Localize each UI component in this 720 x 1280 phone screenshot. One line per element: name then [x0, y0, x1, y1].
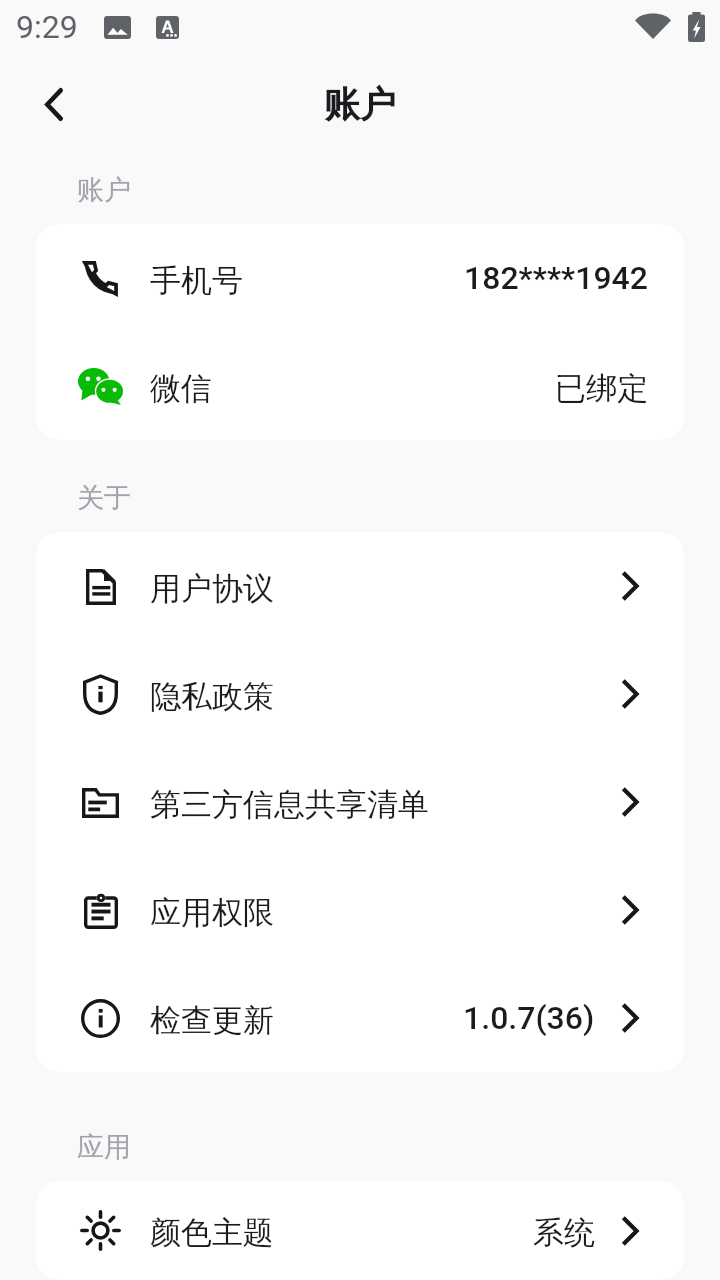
- staticText: 手机号: [150, 261, 243, 300]
- staticText: 9:29: [16, 8, 78, 46]
- button[interactable]: 微信: [36, 332, 684, 440]
- button[interactable]: 用户协议: [36, 532, 684, 640]
- staticText: 隐私政策: [150, 677, 274, 716]
- button[interactable]: 隐私政策: [36, 640, 684, 748]
- staticText: 颜色主题: [150, 1213, 274, 1252]
- staticText: 第三方信息共享清单: [150, 785, 429, 824]
- button[interactable]: Back: [22, 74, 86, 138]
- staticText: 已绑定: [555, 369, 648, 408]
- staticText: 182****1942: [464, 259, 648, 297]
- button[interactable]: 应用权限: [36, 856, 684, 964]
- button[interactable]: 检查更新: [36, 964, 684, 1072]
- staticText: 账户: [324, 82, 396, 127]
- staticText: 检查更新: [150, 1001, 274, 1040]
- button[interactable]: 第三方信息共享清单: [36, 748, 684, 856]
- staticText: 用户协议: [150, 569, 274, 608]
- staticText: 应用: [77, 1130, 131, 1164]
- staticText: 微信: [150, 369, 212, 408]
- button[interactable]: 手机号: [36, 224, 684, 332]
- staticText: 账户: [77, 173, 131, 207]
- staticText: 1.0.7(36): [463, 999, 595, 1037]
- staticText: 系统: [533, 1213, 595, 1252]
- staticText: 应用权限: [150, 893, 274, 932]
- staticText: 关于: [77, 481, 131, 515]
- button[interactable]: 颜色主题: [36, 1181, 684, 1280]
